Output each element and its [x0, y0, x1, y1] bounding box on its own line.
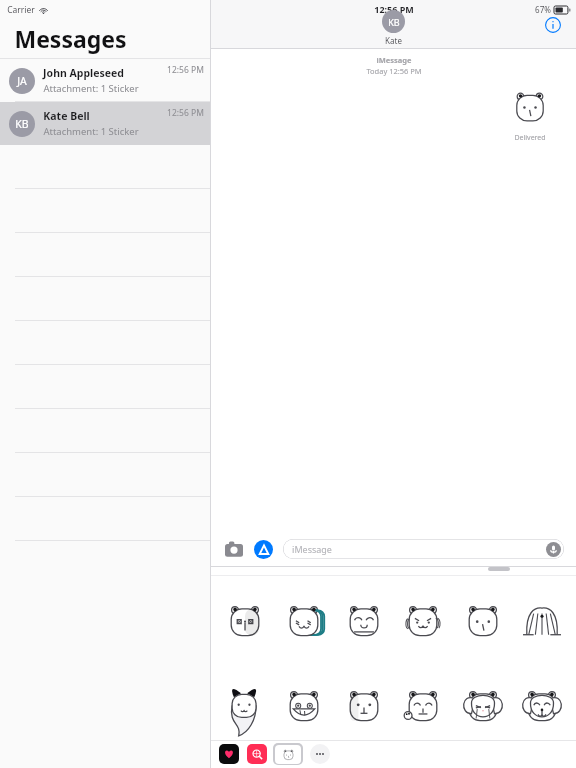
staticText: 67% — [535, 4, 551, 15]
staticText: 12:56 PM — [374, 3, 414, 15]
staticText: Today 12:56 PM — [366, 66, 422, 76]
staticText: JA — [17, 74, 27, 88]
staticText: 12:56 PM — [167, 64, 204, 76]
button[interactable]: Sticker — [397, 679, 449, 731]
button[interactable]: App Store — [254, 540, 273, 559]
button[interactable] — [488, 567, 510, 571]
staticText: Kate Bell — [43, 109, 90, 123]
button[interactable]: Sticker — [457, 594, 509, 646]
button[interactable]: KB — [0, 102, 210, 145]
button[interactable]: Sticker — [516, 679, 568, 731]
button[interactable]: JA — [0, 59, 210, 102]
staticText: Attachment: 1 Sticker — [43, 125, 139, 138]
button[interactable]: Sticker — [516, 594, 568, 646]
button[interactable]: Details — [542, 14, 564, 36]
staticText: Carrier — [7, 4, 35, 16]
staticText: Attachment: 1 Sticker — [43, 82, 139, 95]
staticText: iMessage — [376, 55, 412, 65]
button[interactable]: Heart stickers app — [219, 744, 239, 764]
button[interactable]: Sticker — [278, 679, 330, 731]
staticText: iMessage — [292, 543, 332, 555]
staticText: John Appleseed — [43, 66, 124, 80]
button[interactable]: More apps — [310, 744, 330, 764]
button[interactable]: Sticker — [457, 679, 509, 731]
staticText: KB — [388, 16, 400, 28]
button[interactable]: KB — [382, 10, 405, 33]
staticText: 12:56 PM — [167, 107, 204, 119]
button[interactable]: Sticker — [338, 679, 390, 731]
button[interactable]: Sticker — [219, 594, 271, 646]
button[interactable]: Sticker — [338, 594, 390, 646]
staticText: Delivered — [514, 133, 546, 143]
button[interactable]: Sticker — [219, 679, 271, 731]
button[interactable]: Sticker — [278, 594, 330, 646]
button[interactable]: Camera — [223, 538, 245, 560]
staticText: Kate — [385, 35, 402, 46]
button[interactable]: Sticker — [397, 594, 449, 646]
staticText: Messages — [14, 23, 127, 54]
button[interactable]: Image search app — [247, 744, 267, 764]
staticText: KB — [15, 117, 29, 131]
button[interactable]: Bear sticker pack — [273, 743, 303, 765]
button[interactable]: iMessage — [283, 539, 564, 559]
button[interactable]: Record audio — [546, 542, 561, 557]
